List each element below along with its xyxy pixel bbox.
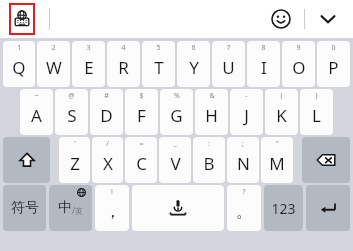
staticText: /英 <box>72 205 83 216</box>
staticText: 2 <box>51 43 56 53</box>
button[interactable]: 123 <box>264 185 303 231</box>
staticText: F <box>137 104 146 127</box>
staticText: 4 <box>121 43 126 53</box>
button[interactable]: 4 <box>107 41 140 87</box>
staticText: _ <box>173 139 177 149</box>
button[interactable]: ( <box>265 89 298 135</box>
staticText: Z <box>70 152 80 175</box>
staticText: W <box>46 56 62 79</box>
button[interactable]: " <box>261 137 293 183</box>
staticText: O <box>292 56 306 79</box>
staticText: E <box>84 56 94 79</box>
button[interactable]: @ <box>55 89 88 135</box>
staticText: Q <box>12 56 26 79</box>
button[interactable]: ) <box>300 89 333 135</box>
staticText: ; <box>242 139 244 149</box>
staticText: : <box>208 139 210 149</box>
staticText: 符号 <box>11 199 39 217</box>
button[interactable]: Input method <box>9 3 35 35</box>
button[interactable]: ? <box>227 185 261 231</box>
staticText: 3 <box>86 43 91 53</box>
button[interactable]: ~ <box>20 89 53 135</box>
staticText: V <box>170 152 181 175</box>
button[interactable]: 中 <box>49 185 92 231</box>
button[interactable]: = <box>125 137 157 183</box>
staticText: K <box>276 104 287 127</box>
staticText: ! <box>111 187 113 197</box>
button[interactable]: 8 <box>247 41 280 87</box>
button[interactable]: 0 <box>317 41 350 87</box>
button[interactable]: - <box>230 89 263 135</box>
button[interactable]: 7 <box>212 41 245 87</box>
staticText: L <box>312 104 321 127</box>
button[interactable]: 1 <box>3 41 35 87</box>
button[interactable]: & <box>195 89 228 135</box>
staticText: ， <box>104 201 121 222</box>
staticText: # <box>104 91 109 101</box>
staticText: 6 <box>191 43 196 53</box>
staticText: " <box>276 139 279 149</box>
staticText: S <box>67 104 77 127</box>
staticText: T <box>154 56 164 79</box>
button[interactable]: 9 <box>282 41 315 87</box>
staticText: 7 <box>226 43 231 53</box>
staticText: P <box>328 56 339 79</box>
staticText: J <box>244 104 249 127</box>
staticText: 。 <box>236 201 253 222</box>
staticText: / <box>106 139 109 149</box>
staticText: A <box>31 104 42 127</box>
staticText: 中 <box>58 199 72 217</box>
staticText: M <box>269 152 285 175</box>
button[interactable]: Hide keyboard <box>313 4 343 34</box>
button[interactable]: Backspace <box>302 137 350 183</box>
staticText: G <box>170 104 183 127</box>
staticText: 0 <box>331 43 336 53</box>
button[interactable]: Emoji <box>266 4 296 34</box>
button[interactable]: ; <box>227 137 259 183</box>
staticText: I <box>261 56 267 79</box>
staticText: % <box>174 91 180 101</box>
staticText: ~ <box>34 91 39 101</box>
button[interactable]: 2 <box>37 41 70 87</box>
staticText: - <box>245 91 248 101</box>
staticText: ' <box>74 139 76 149</box>
button[interactable]: Shift <box>3 137 50 183</box>
button[interactable]: ! <box>95 185 129 231</box>
button[interactable]: _ <box>159 137 191 183</box>
button[interactable]: Space <box>132 185 224 231</box>
staticText: ( <box>280 91 283 101</box>
staticText: B <box>203 152 215 175</box>
button[interactable]: / <box>92 137 123 183</box>
staticText: 5 <box>156 43 161 53</box>
button[interactable]: 符号 <box>3 185 46 231</box>
staticText: U <box>222 56 235 79</box>
staticText: Y <box>189 56 199 79</box>
button[interactable]: 6 <box>177 41 210 87</box>
staticText: R <box>118 56 129 79</box>
button[interactable]: 5 <box>142 41 175 87</box>
button[interactable]: $ <box>125 89 158 135</box>
staticText: 123 <box>271 199 296 218</box>
button[interactable]: % <box>160 89 193 135</box>
staticText: 9 <box>296 43 301 53</box>
staticText: & <box>209 91 215 101</box>
staticText: @ <box>68 91 75 101</box>
staticText: N <box>237 152 250 175</box>
button[interactable]: 3 <box>72 41 105 87</box>
button[interactable]: ' <box>59 137 90 183</box>
staticText: H <box>205 104 218 127</box>
staticText: ? <box>242 187 246 197</box>
staticText: 8 <box>261 43 266 53</box>
button[interactable]: : <box>193 137 225 183</box>
staticText: X <box>103 152 113 175</box>
staticText: 1 <box>17 43 22 53</box>
button[interactable]: # <box>90 89 123 135</box>
staticText: $ <box>139 91 144 101</box>
staticText: = <box>139 139 144 149</box>
staticText: D <box>100 104 113 127</box>
staticText: ) <box>315 91 318 101</box>
button[interactable]: Enter <box>306 185 350 231</box>
staticText: C <box>136 152 147 175</box>
